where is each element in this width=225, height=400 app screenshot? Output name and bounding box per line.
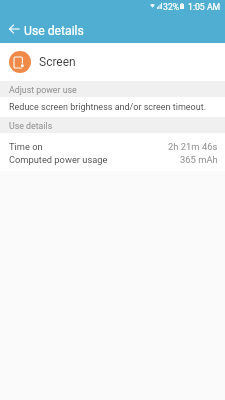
staticText: 365 mAh xyxy=(180,154,218,165)
staticText: Screen xyxy=(39,55,76,69)
staticText: 1:05 AM xyxy=(188,2,221,12)
staticText: Adjust power use xyxy=(9,85,77,95)
staticText: Reduce screen brightness and/or screen t… xyxy=(9,102,207,113)
staticText: Use details xyxy=(24,24,84,38)
staticText: Use details xyxy=(9,121,53,131)
staticText: 2h 21m 46s xyxy=(168,141,218,152)
button[interactable]: Screen xyxy=(0,43,225,81)
staticText: 32% xyxy=(163,2,180,12)
button[interactable]: Back xyxy=(3,18,25,40)
staticText: Computed power usage xyxy=(9,154,108,165)
staticText: Time on xyxy=(9,141,43,152)
